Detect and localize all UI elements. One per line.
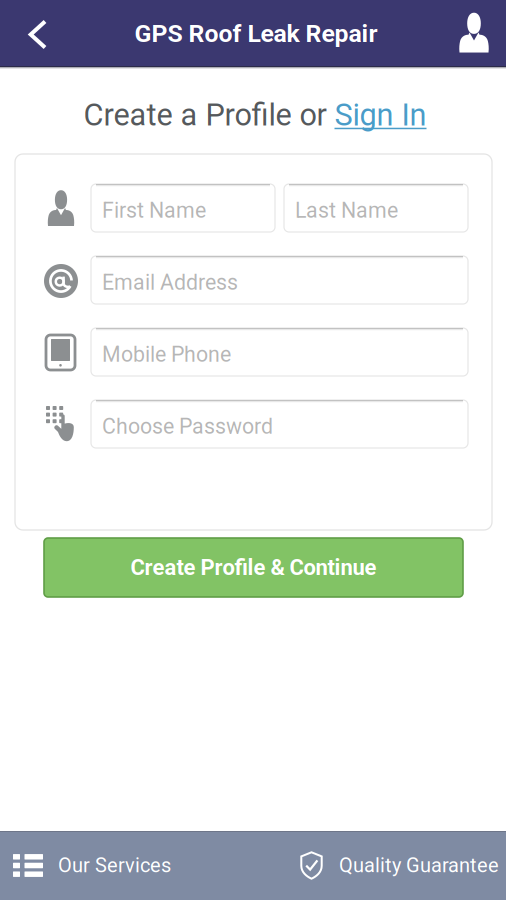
staticText: First Name xyxy=(102,198,206,223)
button[interactable]: Quality Guarantee xyxy=(290,831,506,900)
staticText: Mobile Phone xyxy=(102,342,231,367)
staticText: Email Address xyxy=(102,270,238,295)
staticText: Quality Guarantee xyxy=(339,854,499,877)
staticText: Create a Profile or xyxy=(83,97,334,133)
staticText: Our Services xyxy=(58,854,171,877)
button[interactable]: Account xyxy=(444,0,504,66)
button[interactable]: Our Services xyxy=(0,831,290,900)
staticText: Choose Password xyxy=(102,414,273,439)
staticText: Create Profile & Continue xyxy=(130,555,376,580)
button[interactable]: Back xyxy=(0,1,75,68)
button[interactable]: Sign In xyxy=(334,97,426,133)
staticText: Sign In xyxy=(334,97,426,133)
button[interactable]: Create Profile & Continue xyxy=(44,538,463,597)
staticText: GPS Roof Leak Repair xyxy=(134,19,377,48)
staticText: Last Name xyxy=(295,198,398,223)
